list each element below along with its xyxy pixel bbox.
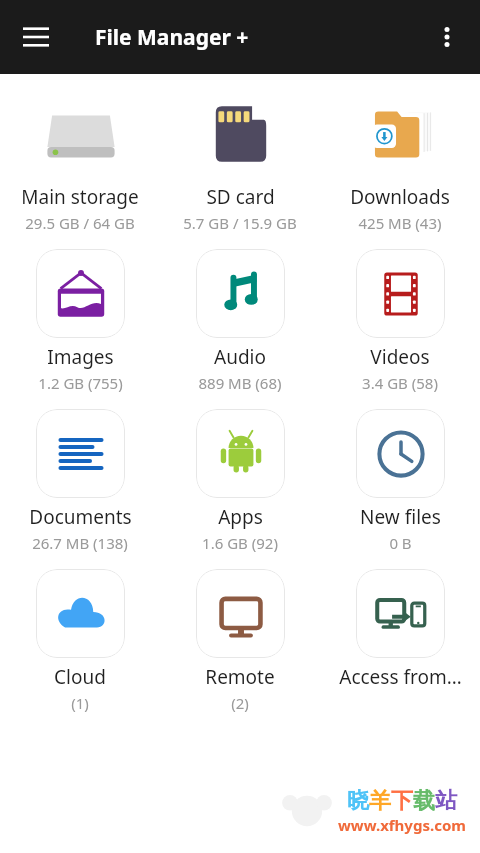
staticText: 0 B bbox=[389, 533, 412, 553]
button[interactable]: Cloud bbox=[0, 563, 160, 723]
staticText: Cloud bbox=[54, 664, 106, 690]
staticText: 425 MB (43) bbox=[358, 213, 442, 233]
staticText: 5.7 GB / 15.9 GB bbox=[183, 213, 297, 233]
button[interactable]: Documents bbox=[0, 403, 160, 563]
button[interactable]: Apps bbox=[160, 403, 320, 563]
staticText: Images bbox=[47, 344, 114, 370]
button[interactable]: Images bbox=[0, 243, 160, 403]
staticText: www.xfhygs.com bbox=[338, 815, 466, 835]
button[interactable]: SD card bbox=[160, 83, 320, 243]
button[interactable]: New files bbox=[320, 403, 480, 563]
staticText: Documents bbox=[29, 504, 132, 530]
button[interactable]: Downloads bbox=[320, 83, 480, 243]
staticText: 889 MB (68) bbox=[198, 373, 282, 393]
button[interactable]: Remote bbox=[160, 563, 320, 723]
staticText: 下 bbox=[391, 787, 413, 815]
button[interactable]: More options bbox=[424, 14, 470, 60]
staticText: 3.4 GB (58) bbox=[362, 373, 438, 393]
staticText: Access from… bbox=[339, 664, 462, 690]
staticText: File Manager + bbox=[95, 23, 249, 52]
button[interactable]: Videos bbox=[320, 243, 480, 403]
staticText: 1.6 GB (92) bbox=[202, 533, 278, 553]
staticText: Downloads bbox=[350, 184, 450, 210]
staticText: 站 bbox=[435, 787, 457, 815]
button[interactable]: Audio bbox=[160, 243, 320, 403]
staticText: (1) bbox=[71, 693, 89, 713]
staticText: SD card bbox=[206, 184, 275, 210]
staticText: Remote bbox=[205, 664, 275, 690]
button[interactable]: Main storage bbox=[0, 83, 160, 243]
staticText: Apps bbox=[218, 504, 263, 530]
staticText: 26.7 MB (138) bbox=[32, 533, 128, 553]
staticText: 1.2 GB (755) bbox=[38, 373, 123, 393]
staticText: Videos bbox=[370, 344, 430, 370]
staticText: (2) bbox=[231, 693, 249, 713]
button[interactable]: Open navigation menu bbox=[12, 13, 60, 61]
staticText: Audio bbox=[214, 344, 266, 370]
staticText: 晓 bbox=[347, 787, 369, 815]
staticText: 29.5 GB / 64 GB bbox=[25, 213, 135, 233]
staticText: 载 bbox=[413, 787, 435, 815]
staticText: 羊 bbox=[369, 787, 391, 815]
button[interactable]: Access from… bbox=[320, 563, 480, 723]
staticText: Main storage bbox=[21, 184, 139, 210]
staticText: New files bbox=[360, 504, 441, 530]
